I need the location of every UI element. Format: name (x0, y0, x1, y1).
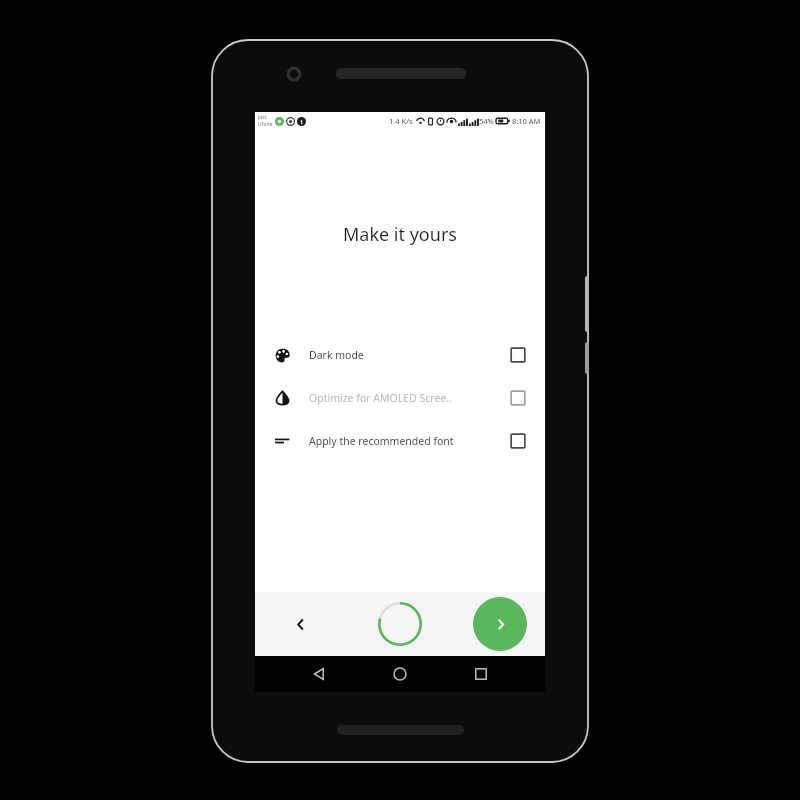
staticText: Make it yours (343, 222, 457, 247)
button[interactable]: Previous (285, 609, 315, 639)
button[interactable]: Apply the recommended font (507, 430, 529, 452)
staticText: 54% (479, 116, 494, 126)
staticText: 1.4 K/s (389, 116, 413, 126)
staticText: Optimize for AMOLED Scree.. (309, 391, 503, 405)
button[interactable]: Next (473, 597, 527, 651)
button[interactable]: Recents (464, 657, 498, 691)
staticText: Ufone (258, 121, 273, 128)
button[interactable]: Back (302, 657, 336, 691)
staticText: Apply the recommended font (309, 434, 503, 448)
button[interactable]: Optimize for AMOLED Scree.. (255, 376, 545, 419)
staticText: Jazz (258, 114, 267, 121)
button[interactable]: Optimize for AMOLED Scree.. (507, 387, 529, 409)
button[interactable]: Dark mode (507, 344, 529, 366)
button[interactable]: Home (383, 657, 417, 691)
button[interactable]: Apply the recommended font (255, 419, 545, 462)
staticText: Dark mode (309, 348, 503, 362)
button[interactable]: Dark mode (255, 333, 545, 376)
staticText: 8:10 AM (512, 116, 541, 126)
